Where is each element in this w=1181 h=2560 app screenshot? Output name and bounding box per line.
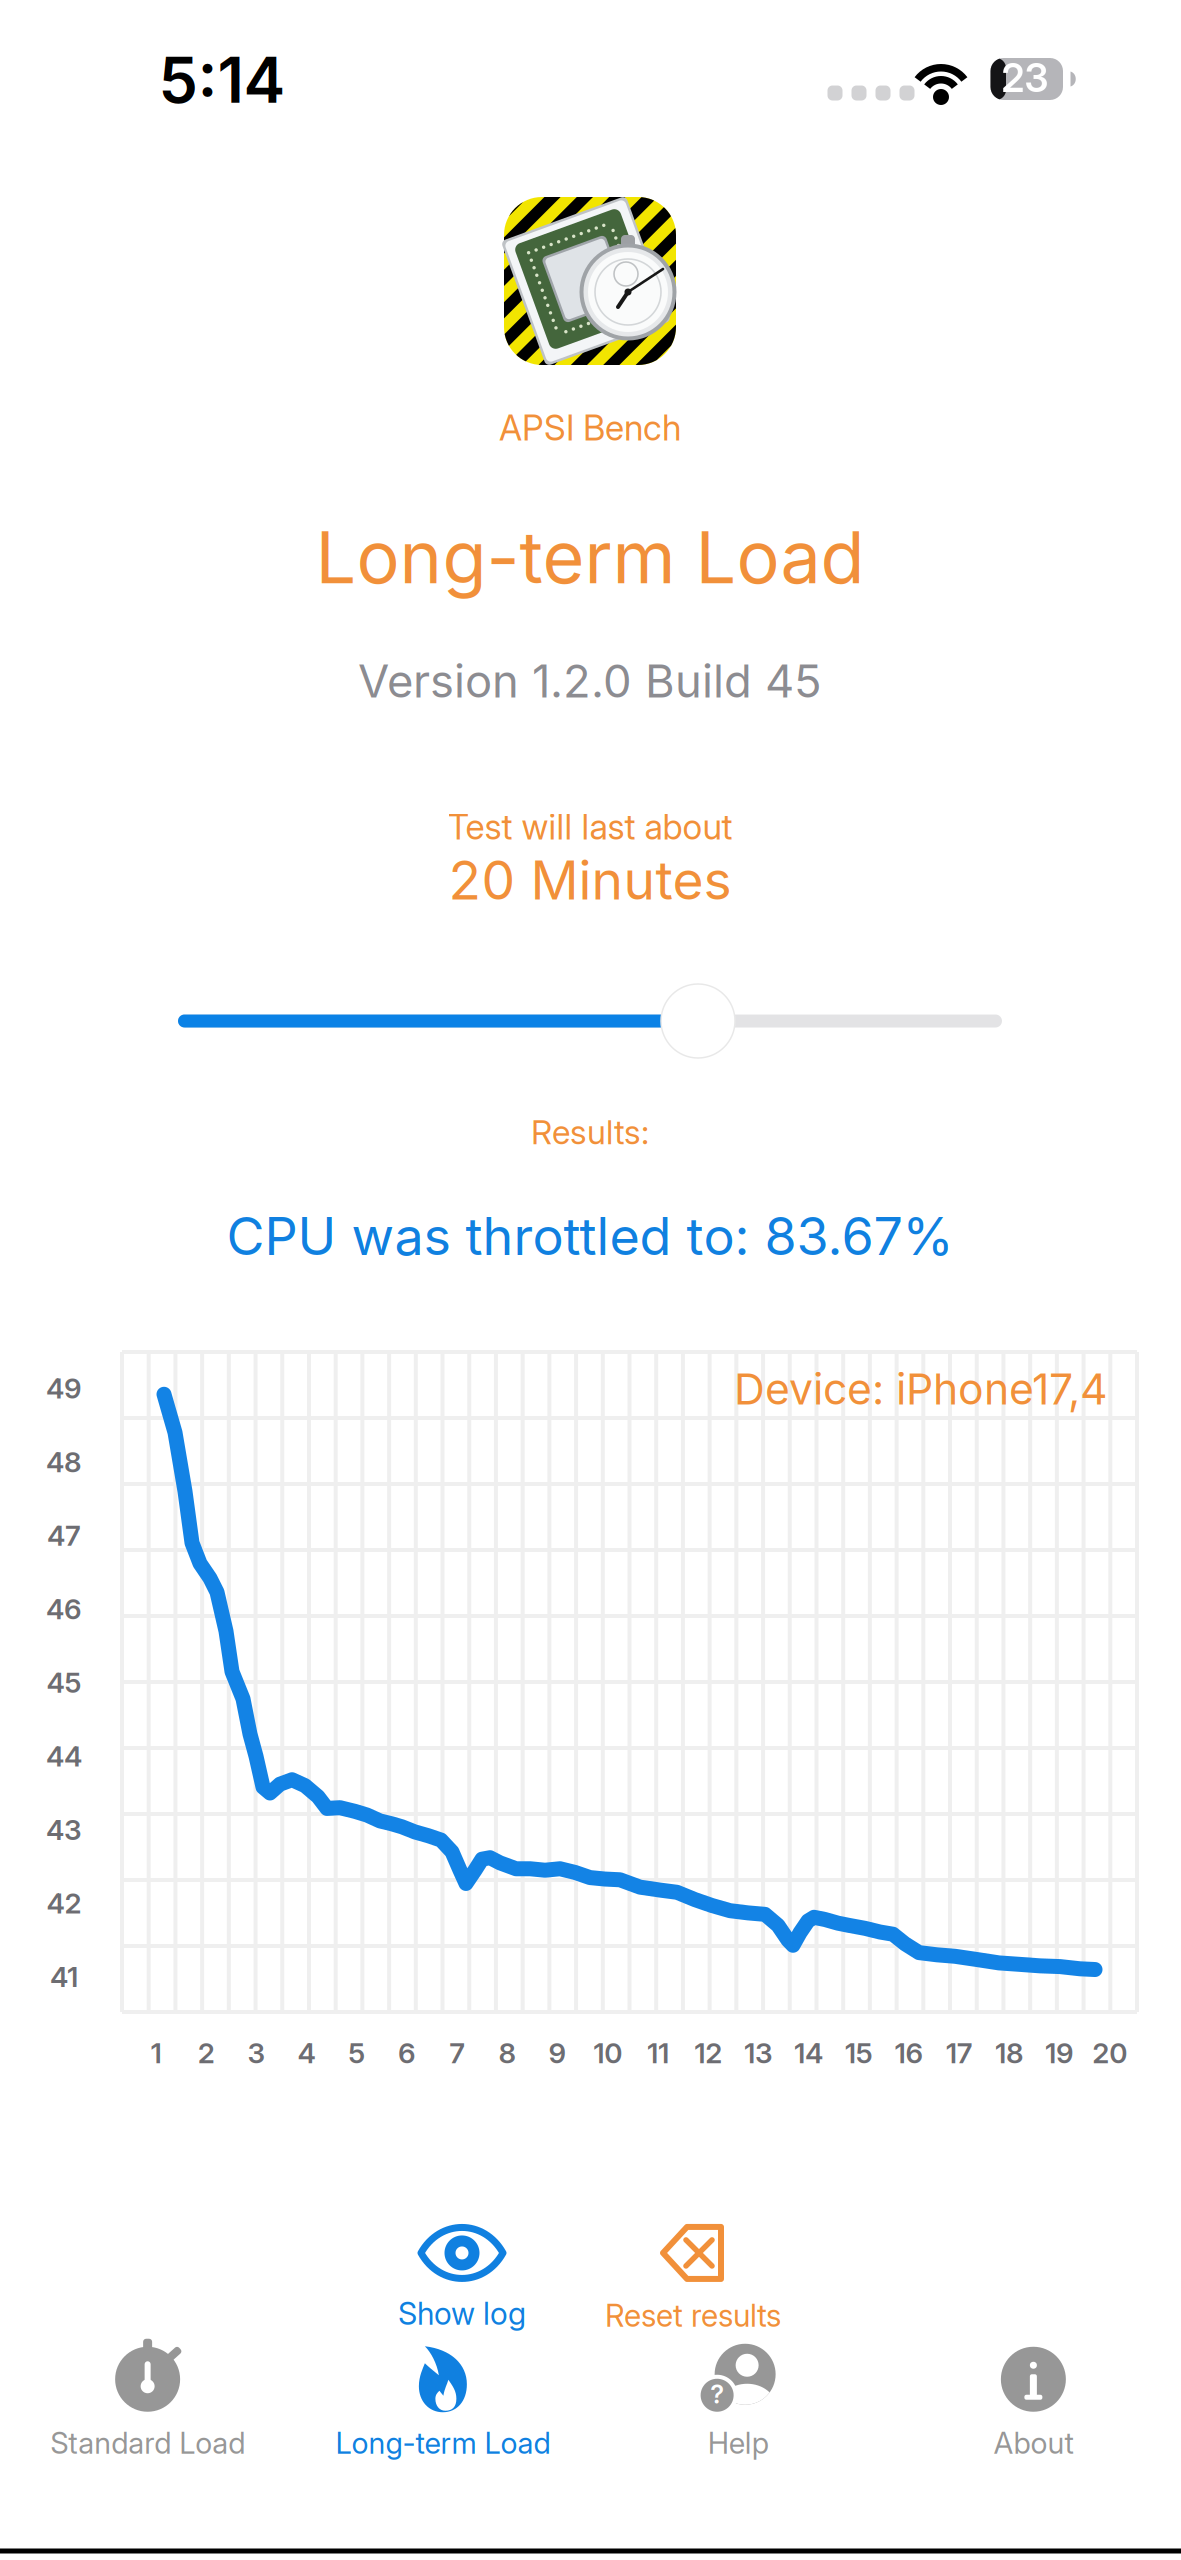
staticText: 5:14	[158, 42, 285, 118]
staticText: ?	[710, 2379, 724, 2410]
staticText: 10	[593, 2036, 622, 2070]
button[interactable]: About	[886, 2333, 1181, 2467]
staticText: Standard Load	[50, 2425, 245, 2461]
staticText: 44	[46, 1739, 82, 1773]
staticText: 7	[449, 2036, 465, 2070]
staticText: 6	[398, 2036, 416, 2070]
staticText: Reset results	[605, 2297, 781, 2334]
staticText: 47	[47, 1519, 81, 1552]
staticText: 4	[298, 2036, 316, 2070]
staticText: 18	[995, 2036, 1024, 2070]
staticText: APSI Bench	[499, 407, 681, 449]
staticText: Long-term Load	[315, 513, 864, 600]
button[interactable]: ?	[590, 2333, 886, 2467]
staticText: 5	[348, 2036, 365, 2070]
staticText: 8	[498, 2036, 516, 2070]
staticText: 45	[46, 1666, 81, 1700]
staticText: Version 1.2.0 Build 45	[358, 654, 822, 708]
staticText: 3	[247, 2036, 265, 2070]
button[interactable]: Show log	[398, 2224, 526, 2332]
staticText: Device: iPhone17,4	[734, 1363, 1108, 1415]
staticText: Test will last about	[447, 806, 732, 848]
button[interactable]: Standard Load	[0, 2333, 295, 2467]
staticText: 11	[647, 2036, 669, 2070]
staticText: 16	[894, 2036, 923, 2070]
staticText: 23	[1001, 55, 1048, 101]
staticText: 9	[549, 2036, 567, 2070]
staticText: 20 Minutes	[448, 848, 731, 912]
staticText: 15	[845, 2036, 873, 2070]
staticText: 41	[50, 1960, 78, 1994]
staticText: 46	[46, 1592, 82, 1626]
staticText: Long-term Load	[335, 2425, 550, 2461]
staticText: Help	[708, 2425, 769, 2461]
staticText: 12	[694, 2036, 722, 2070]
button[interactable]: Test duration	[178, 976, 1002, 1066]
staticText: 1	[150, 2036, 161, 2070]
staticText: 2	[198, 2036, 215, 2070]
staticText: 13	[744, 2036, 773, 2070]
staticText: 49	[46, 1371, 82, 1405]
staticText: 19	[1045, 2036, 1074, 2070]
staticText: CPU was throttled to: 83.67%	[226, 1204, 953, 1267]
staticText: Show log	[398, 2295, 526, 2332]
staticText: 20	[1092, 2036, 1127, 2070]
staticText: 42	[46, 1886, 81, 1920]
staticText: 14	[794, 2036, 823, 2070]
button[interactable]: Reset results	[605, 2222, 781, 2334]
staticText: 48	[46, 1445, 82, 1479]
button[interactable]: Long-term Load	[295, 2333, 590, 2467]
staticText: Results:	[531, 1112, 649, 1152]
staticText: About	[993, 2425, 1073, 2461]
staticText: 17	[946, 2036, 973, 2070]
staticText: 43	[46, 1813, 82, 1847]
